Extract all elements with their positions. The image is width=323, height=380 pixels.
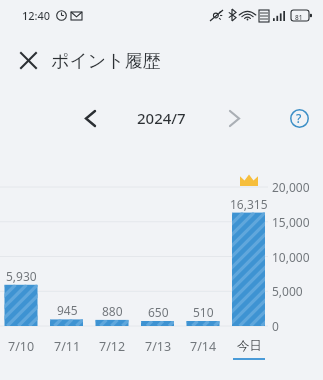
staticText: 945 bbox=[57, 302, 78, 318]
staticText: 880 bbox=[102, 303, 123, 319]
staticText: 7/10 bbox=[8, 338, 35, 355]
staticText: 81 bbox=[295, 13, 303, 22]
button[interactable]: 次の月 bbox=[216, 100, 252, 136]
staticText: ポイント履歴 bbox=[51, 50, 161, 73]
button[interactable]: 7/13 bbox=[134, 338, 182, 364]
staticText: 7/11 bbox=[54, 338, 81, 355]
staticText: 2024/7 bbox=[137, 108, 186, 128]
staticText: 7/13 bbox=[145, 338, 172, 355]
button[interactable]: ヘルプ bbox=[281, 100, 317, 136]
staticText: 15,000 bbox=[272, 214, 310, 230]
staticText: 7/14 bbox=[190, 338, 217, 355]
staticText: 7/12 bbox=[99, 338, 126, 355]
button[interactable]: 7/10 bbox=[0, 338, 45, 364]
button[interactable]: 前の月 bbox=[72, 100, 108, 136]
button[interactable]: 今日 bbox=[225, 338, 273, 364]
staticText: 650 bbox=[148, 304, 169, 320]
staticText: 510 bbox=[193, 304, 214, 320]
button[interactable]: 7/11 bbox=[43, 338, 91, 364]
staticText: 今日 bbox=[237, 338, 262, 354]
staticText: 0 bbox=[272, 318, 279, 334]
button[interactable]: 7/12 bbox=[88, 338, 136, 364]
button[interactable]: 2024/7 bbox=[130, 100, 192, 136]
staticText: 20,000 bbox=[272, 179, 310, 195]
button[interactable]: 7/14 bbox=[179, 338, 227, 364]
staticText: 5,000 bbox=[272, 283, 303, 299]
staticText: ? bbox=[296, 110, 302, 126]
button[interactable]: 閉じる bbox=[10, 42, 46, 78]
staticText: 5,930 bbox=[6, 268, 37, 284]
staticText: 16,315 bbox=[230, 196, 268, 212]
staticText: 12:40 bbox=[22, 8, 51, 23]
staticText: 10,000 bbox=[272, 249, 310, 265]
